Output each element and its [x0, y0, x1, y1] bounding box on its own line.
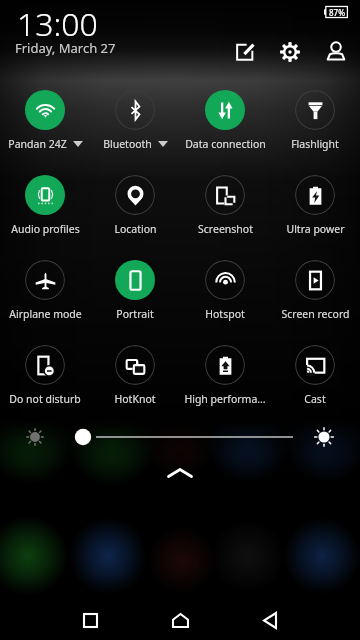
button[interactable]: Home — [135, 598, 225, 640]
staticText: Screenshot — [198, 222, 253, 236]
button[interactable]: Back — [225, 598, 315, 640]
staticText: HotKnot — [114, 392, 156, 406]
button[interactable]: Edit quick settings — [226, 32, 264, 70]
button[interactable]: Screenshot — [180, 170, 270, 255]
staticText: Screen record — [281, 307, 350, 321]
button[interactable]: Data connection — [180, 85, 270, 170]
staticText: Airplane mode — [9, 307, 82, 321]
button[interactable]: Do not disturb — [0, 340, 90, 425]
button[interactable]: Cast — [270, 340, 360, 425]
button[interactable]: High performa… — [180, 340, 270, 425]
button[interactable]: Ultra power — [270, 170, 360, 255]
staticText: Ultra power — [286, 222, 345, 236]
button[interactable]: Location — [90, 170, 180, 255]
staticText: Cast — [304, 392, 326, 406]
button[interactable]: Pandan 24Z — [0, 85, 90, 170]
staticText: Do not disturb — [9, 392, 81, 406]
staticText: Portrait — [116, 307, 154, 321]
staticText: Data connection — [185, 137, 266, 151]
button[interactable]: HotKnot — [90, 340, 180, 425]
staticText: High performa… — [184, 392, 266, 406]
staticText: Pandan 24Z — [8, 137, 67, 151]
staticText: Location — [114, 222, 157, 236]
button[interactable]: Screen record — [270, 255, 360, 340]
staticText: 13:00 — [17, 2, 98, 46]
button[interactable]: Settings — [271, 33, 309, 71]
staticText: Audio profiles — [11, 222, 80, 236]
button[interactable]: Bluetooth — [90, 85, 180, 170]
button[interactable]: User — [317, 32, 355, 70]
staticText: Hotspot — [205, 307, 245, 321]
button[interactable]: Airplane mode — [0, 255, 90, 340]
staticText: Bluetooth — [103, 137, 152, 151]
staticText: Flashlight — [291, 137, 339, 151]
button[interactable]: Portrait — [90, 255, 180, 340]
staticText: Friday, March 27 — [15, 39, 116, 57]
button[interactable]: Recents — [45, 598, 135, 640]
staticText: 87% — [329, 7, 345, 18]
button[interactable]: Flashlight — [270, 85, 360, 170]
button[interactable]: Hotspot — [180, 255, 270, 340]
button[interactable]: Audio profiles — [0, 170, 90, 255]
